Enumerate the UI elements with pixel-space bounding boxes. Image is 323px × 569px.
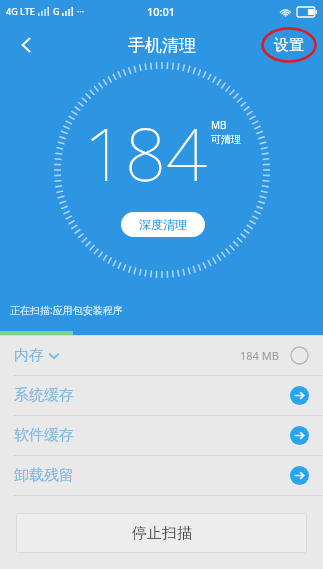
staticText: 10:01 xyxy=(147,4,176,19)
staticText: 正在扫描:应用包安装程序 xyxy=(10,303,123,317)
other: Open 系统缓存 xyxy=(290,386,309,405)
staticText: 184 xyxy=(84,104,208,202)
staticText: 184 MB xyxy=(240,348,279,363)
button[interactable]: 停止扫描 xyxy=(16,513,307,553)
staticText: G xyxy=(53,5,60,17)
staticText: 软件缓存 xyxy=(14,426,74,445)
staticText: ··· xyxy=(77,5,85,17)
staticText: MB xyxy=(211,118,227,132)
button[interactable]: 卸载残留 xyxy=(0,456,323,495)
staticText: 系统缓存 xyxy=(14,386,74,405)
staticText: 内存 xyxy=(14,346,44,365)
staticText: 手机清理 xyxy=(128,35,196,56)
other: Open 卸载残留 xyxy=(290,466,309,485)
staticText: 停止扫描 xyxy=(132,524,192,543)
button[interactable]: 系统缓存 xyxy=(0,376,323,415)
button[interactable]: Back xyxy=(4,23,48,67)
button[interactable]: 内存 xyxy=(0,336,323,375)
button[interactable]: 软件缓存 xyxy=(0,416,323,455)
other: Open 软件缓存 xyxy=(290,426,309,445)
staticText: 卸载残留 xyxy=(14,466,74,485)
staticText: 深度清理 xyxy=(139,217,187,232)
button[interactable]: 设置 xyxy=(261,27,317,63)
button[interactable]: 深度清理 xyxy=(121,212,205,237)
staticText: 4G LTE xyxy=(6,5,35,17)
staticText: 设置 xyxy=(274,36,304,55)
staticText: 可清理 xyxy=(211,133,241,146)
